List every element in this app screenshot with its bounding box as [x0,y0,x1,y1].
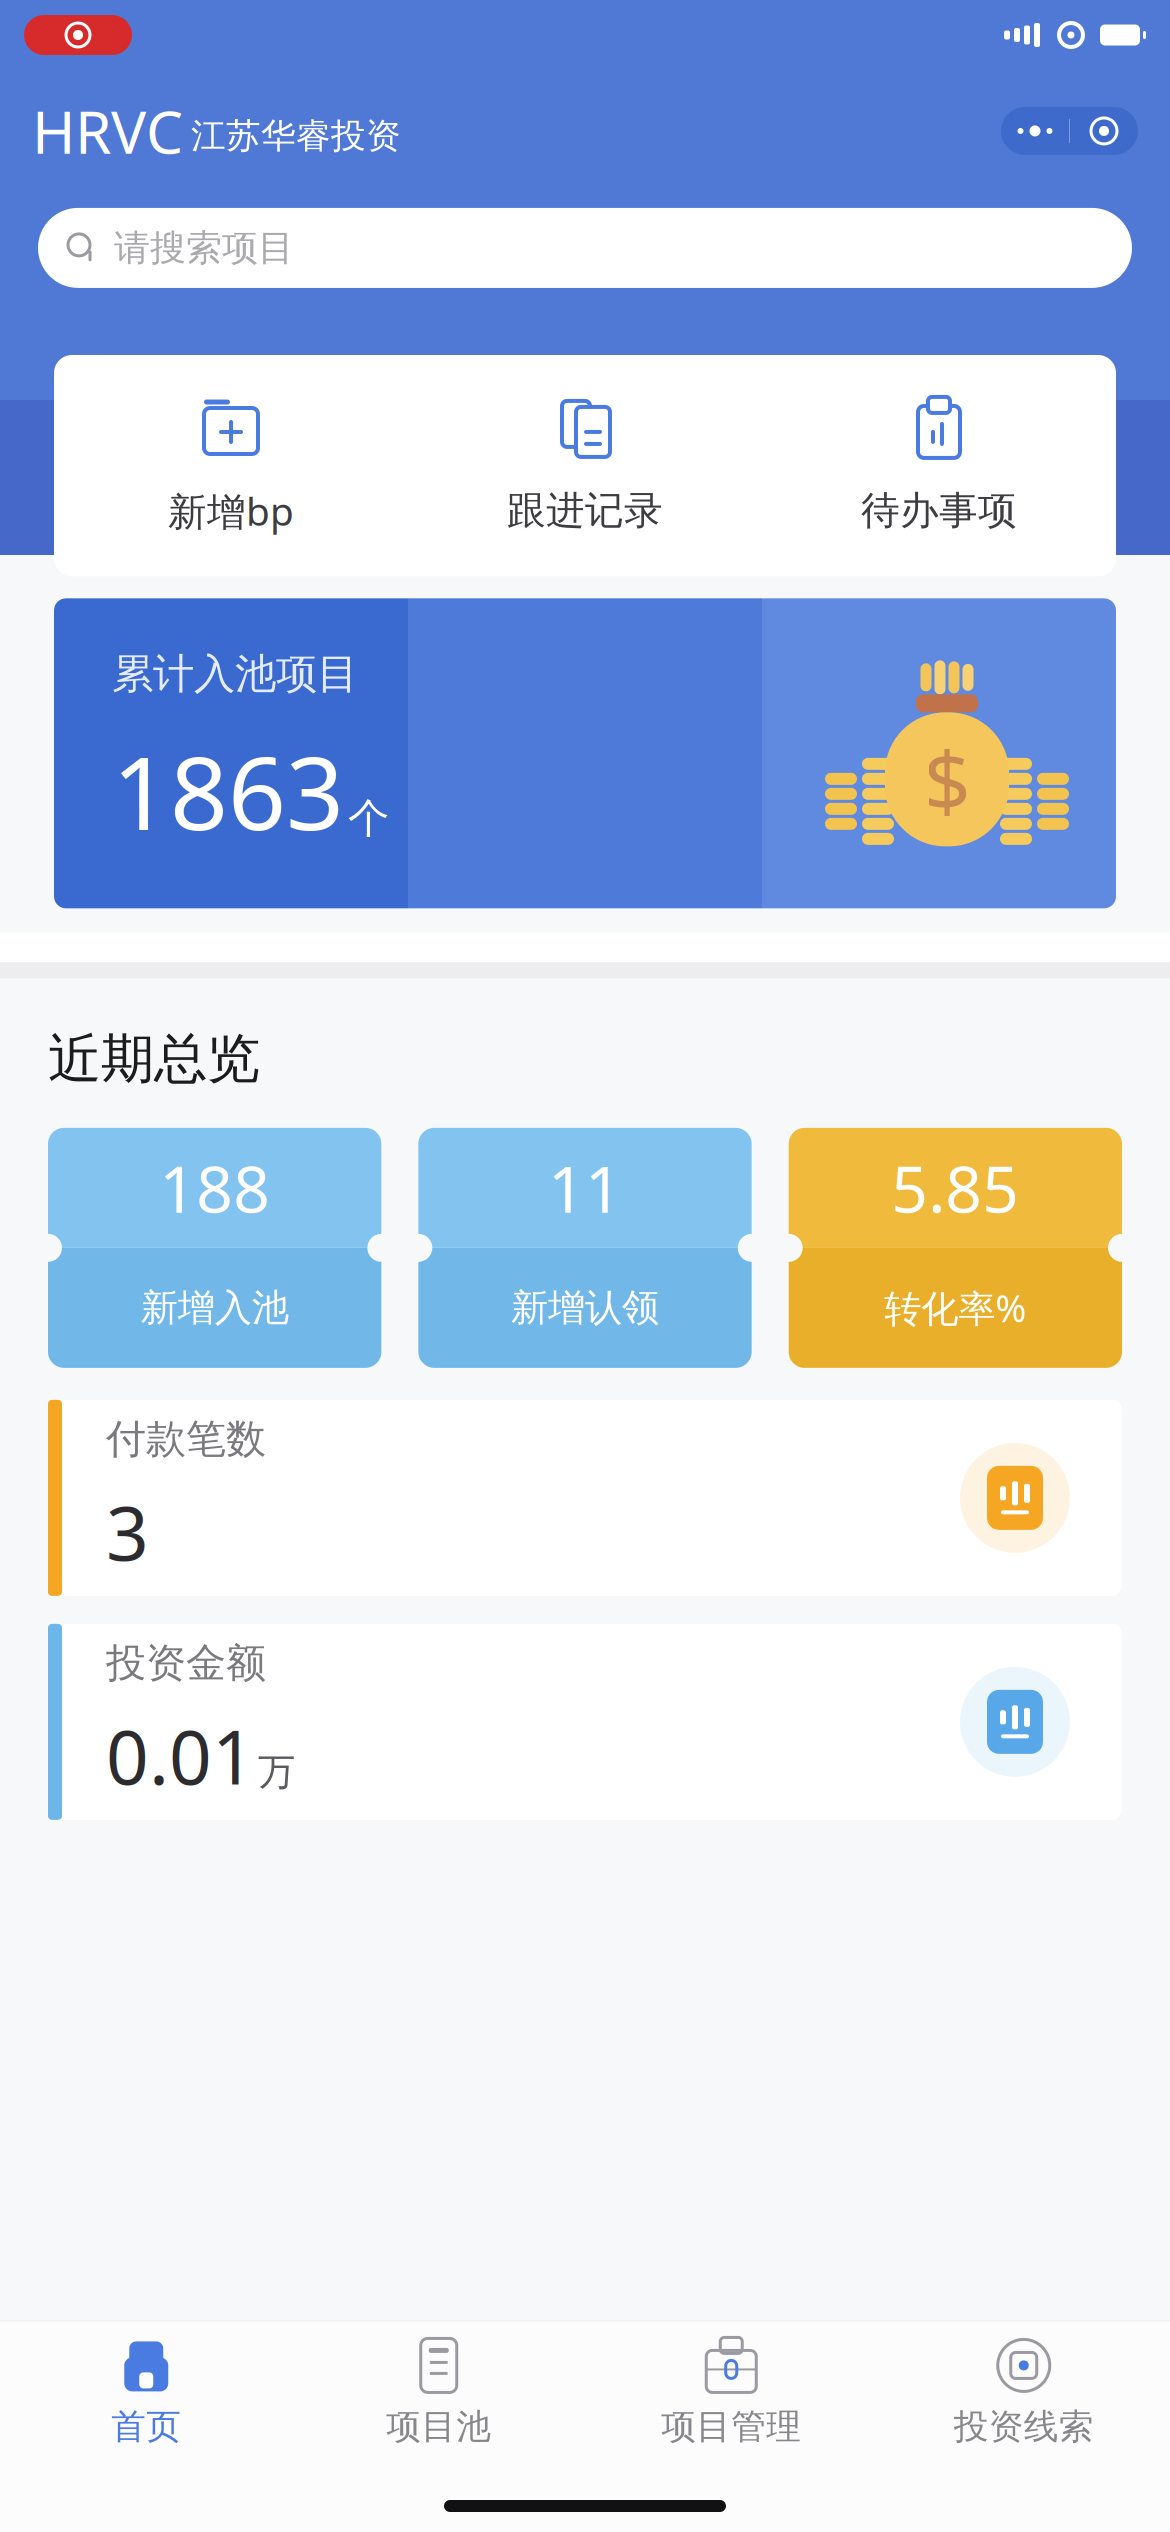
staticText: 项目池 [386,2405,491,2448]
button[interactable]: 188 [48,1128,381,1368]
button[interactable]: 累计入池项目 [0,598,1170,908]
button[interactable]: 付款笔数 [48,1400,1122,1596]
staticText: 付款笔数 [106,1415,266,1464]
staticText: 转化率% [884,1283,1026,1333]
staticText: 跟进记录 [507,487,663,534]
staticText: 新增入池 [141,1285,289,1331]
staticText: 3 [106,1482,149,1581]
button[interactable]: 投资金额 [48,1624,1122,1820]
staticText: 近期总览 [48,1026,260,1092]
staticText: 新增认领 [511,1285,659,1331]
button[interactable]: 跟进记录 [408,397,762,534]
staticText: 1863 [112,723,344,858]
button[interactable]: 11 [418,1128,752,1368]
button[interactable]: 首页 [0,2321,292,2448]
staticText: $ [923,724,970,834]
staticText: 11 [548,1145,622,1230]
staticText: 待办事项 [861,487,1017,534]
staticText: 新增bp [168,485,294,536]
staticText: 首页 [111,2405,181,2448]
staticText: 万 [258,1749,295,1795]
staticText: 0.01 [106,1706,255,1805]
button[interactable]: 待办事项 [762,397,1116,534]
staticText: 5.85 [891,1145,1019,1230]
staticText: 个 [348,793,389,844]
staticText: 累计入池项目 [112,649,358,699]
button[interactable]: 项目管理 [585,2321,877,2448]
staticText: 188 [159,1145,270,1230]
button[interactable]: 请搜索项目 [38,208,1132,288]
staticText: 请搜索项目 [114,226,294,270]
button[interactable]: 更多 [1001,107,1069,155]
staticText: HRVC [32,92,183,170]
button[interactable]: 项目池 [292,2321,585,2448]
staticText: 江苏华睿投资 [191,115,401,157]
staticText: 项目管理 [661,2405,801,2448]
button[interactable]: 5.85 [789,1128,1122,1368]
button[interactable]: 关闭 [1070,107,1138,155]
button[interactable]: 新增bp [54,395,408,536]
staticText: 投资线索 [954,2405,1094,2448]
staticText: 投资金额 [106,1639,266,1688]
button[interactable]: 投资线索 [877,2321,1170,2448]
